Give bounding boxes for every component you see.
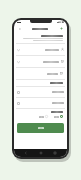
button[interactable]: [14, 44, 67, 55]
button[interactable]: [39, 114, 48, 119]
button[interactable]: [14, 98, 67, 108]
button[interactable]: Recent apps: [52, 150, 58, 156]
button[interactable]: [17, 123, 64, 133]
button[interactable]: Add: [59, 26, 64, 31]
button[interactable]: [14, 56, 67, 67]
button[interactable]: [14, 87, 67, 97]
button[interactable]: [54, 114, 63, 119]
button[interactable]: Back: [17, 26, 22, 31]
button[interactable]: [14, 68, 67, 79]
button[interactable]: Home: [38, 150, 44, 156]
button[interactable]: Back: [23, 150, 29, 156]
